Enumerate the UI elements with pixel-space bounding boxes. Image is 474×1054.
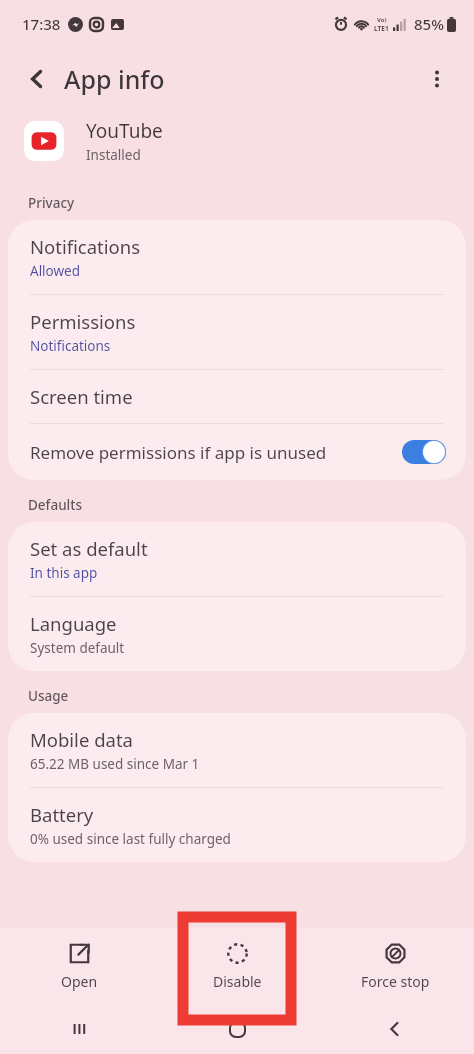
button[interactable]: Disable — [158, 928, 316, 1004]
staticText: 65.22 MB used since Mar 1 — [30, 755, 200, 773]
staticText: Notifications — [30, 337, 111, 355]
button[interactable]: Mobile data — [8, 713, 466, 787]
button[interactable]: More options — [414, 56, 460, 102]
button[interactable]: Battery — [8, 788, 466, 862]
staticText: In this app — [30, 564, 98, 582]
staticText: Permissions — [30, 309, 136, 334]
button[interactable]: Back — [316, 1004, 474, 1054]
staticText: 17:38 — [22, 14, 61, 34]
staticText: Open — [61, 972, 98, 991]
staticText: 0% used since last fully charged — [30, 830, 231, 848]
staticText: Screen time — [30, 384, 133, 409]
button[interactable]: Recent apps — [0, 1004, 158, 1054]
staticText: Defaults — [28, 496, 82, 514]
staticText: Battery — [30, 802, 94, 827]
button[interactable]: Back — [14, 56, 60, 102]
staticText: App info — [64, 62, 165, 96]
button[interactable]: Permissions — [8, 295, 466, 369]
button[interactable]: Open — [0, 928, 158, 1004]
button[interactable]: Language — [8, 597, 466, 671]
staticText: System default — [30, 639, 125, 657]
staticText: 85% — [414, 14, 444, 34]
staticText: Set as default — [30, 536, 148, 561]
staticText: Remove permissions if app is unused — [30, 441, 394, 464]
button[interactable]: Set as default — [8, 522, 466, 596]
button[interactable]: Notifications — [8, 220, 466, 294]
staticText: Force stop — [361, 972, 430, 991]
button[interactable]: Screen time — [8, 370, 466, 423]
staticText: Installed — [86, 146, 141, 164]
button[interactable]: Force stop — [316, 928, 474, 1004]
staticText: Usage — [28, 687, 69, 705]
button[interactable]: Home — [158, 1004, 316, 1054]
button[interactable]: Remove permissions if app is unused — [8, 424, 466, 480]
staticText: Vo) — [377, 16, 387, 24]
staticText: LTE1 — [374, 24, 389, 33]
staticText: YouTube — [86, 118, 163, 144]
button[interactable]: YouTube — [0, 110, 474, 172]
staticText: Allowed — [30, 262, 81, 280]
staticText: Mobile data — [30, 727, 133, 752]
staticText: Language — [30, 611, 117, 636]
staticText: Disable — [213, 972, 262, 991]
staticText: Privacy — [28, 194, 75, 212]
staticText: Notifications — [30, 234, 141, 259]
